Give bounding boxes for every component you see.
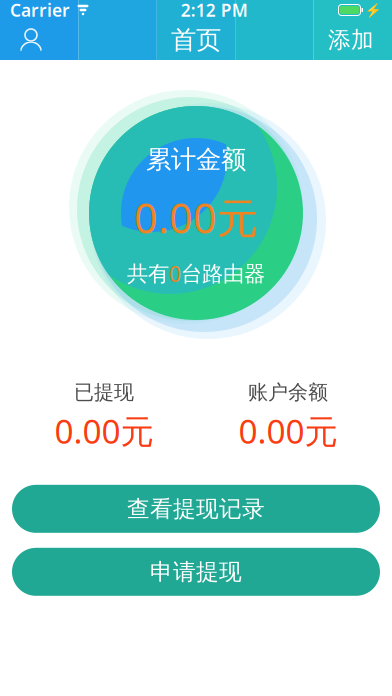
staticText: 已提现 bbox=[74, 380, 134, 405]
button[interactable]: 添加 bbox=[314, 20, 392, 60]
staticText: 查看提现记录 bbox=[127, 495, 265, 523]
staticText: 申请提现 bbox=[150, 558, 242, 586]
button[interactable]: 查看提现记录 bbox=[12, 485, 380, 533]
staticText: 账户余额 bbox=[248, 380, 328, 405]
staticText: ⚡ bbox=[365, 2, 382, 18]
button[interactable]: 申请提现 bbox=[12, 548, 380, 596]
staticText: Carrier bbox=[10, 0, 70, 21]
staticText: 0 bbox=[169, 260, 181, 288]
staticText: 0.00元 bbox=[134, 190, 258, 245]
staticText: 添加 bbox=[328, 26, 374, 54]
staticText: 共有 bbox=[127, 261, 169, 287]
button[interactable]: Profile bbox=[0, 20, 78, 60]
staticText: 0.00元 bbox=[54, 409, 153, 453]
staticText: 首页 bbox=[171, 24, 221, 55]
staticText: 0.00元 bbox=[238, 409, 337, 453]
staticText: 台路由器 bbox=[181, 261, 265, 287]
staticText: 累计金额 bbox=[146, 144, 246, 175]
staticText: 2:12 PM bbox=[181, 0, 248, 21]
